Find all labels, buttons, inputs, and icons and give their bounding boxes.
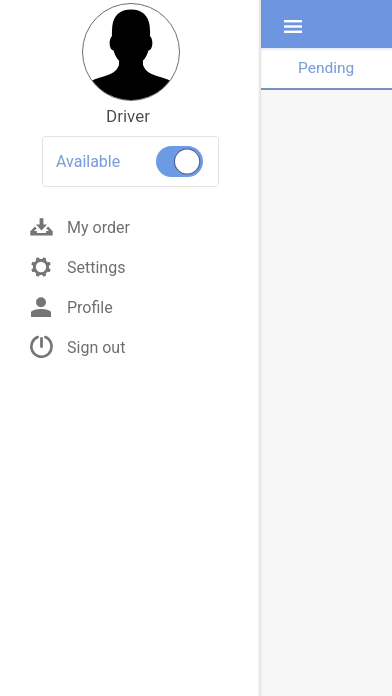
button[interactable]: Open navigation drawer	[275, 8, 311, 44]
button[interactable]: My order	[0, 207, 261, 247]
button[interactable]: Pending	[261, 48, 392, 88]
staticText: Profile	[67, 298, 113, 317]
button[interactable]: Profile	[0, 287, 261, 327]
staticText: Pending	[298, 59, 355, 77]
button[interactable]: Sign out	[0, 327, 261, 367]
staticText: Sign out	[67, 338, 126, 357]
staticText: Available	[56, 152, 121, 171]
button[interactable]: Available	[42, 136, 219, 187]
staticText: Settings	[67, 258, 126, 277]
staticText: Driver	[106, 106, 150, 126]
button[interactable]: Settings	[0, 247, 261, 287]
staticText: My order	[67, 218, 130, 237]
